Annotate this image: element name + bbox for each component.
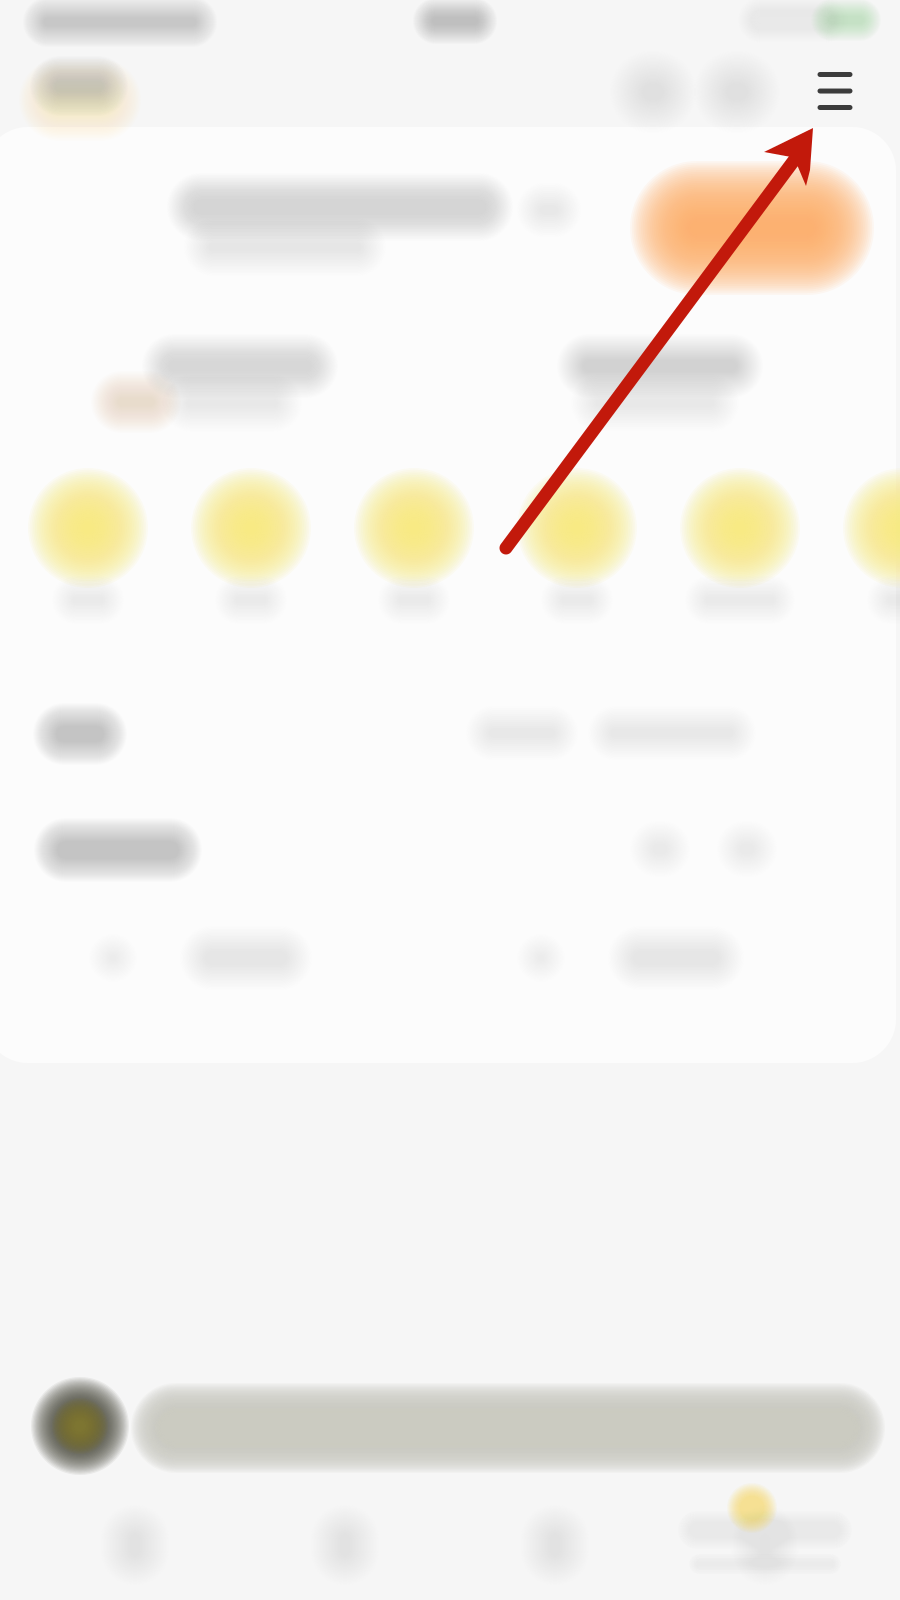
button[interactable]: Tab: [101, 1505, 169, 1585]
button[interactable]: Tab: [731, 1505, 799, 1585]
button[interactable]: Category: [354, 468, 474, 588]
button[interactable]: Tab: [311, 1505, 379, 1585]
button[interactable]: Category: [191, 468, 311, 588]
button[interactable]: Notifications: [694, 51, 780, 133]
button[interactable]: Category: [28, 468, 148, 588]
button[interactable]: Category: [680, 468, 800, 588]
button[interactable]: Tab: [521, 1505, 589, 1585]
button[interactable]: Category: [843, 468, 900, 588]
button[interactable]: Category: [517, 468, 637, 588]
button[interactable]: Menu: [798, 54, 872, 128]
button[interactable]: Messages: [610, 51, 696, 133]
